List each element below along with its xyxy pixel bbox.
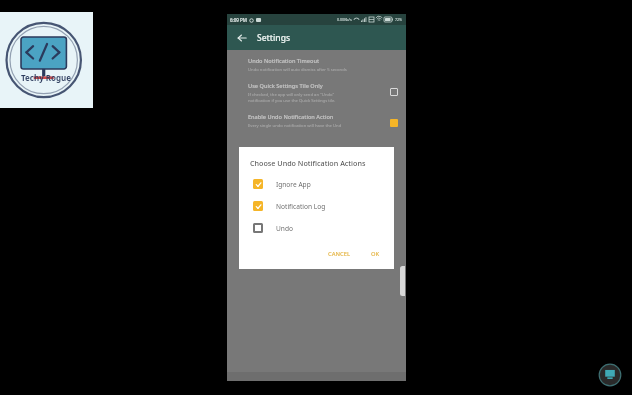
button[interactable]: Use Quick Settings Tile Only [248,82,398,104]
button[interactable]: OK [366,247,385,261]
staticText: Undo notification will auto dismiss afte… [248,67,347,73]
staticText: 72% [395,17,403,22]
staticText: OK [371,250,380,258]
staticText: Ignore App [276,180,311,189]
button[interactable]: Undo [250,223,385,233]
staticText: Undo Notification Timeout [248,57,320,65]
staticText: 6:09 PM [230,17,247,23]
staticText: Techy Rogue [21,72,72,83]
button[interactable]: Back [234,30,250,46]
staticText: Notification Log [276,202,326,211]
staticText: CANCEL [328,250,350,258]
button[interactable]: Ignore App [250,179,385,189]
staticText: Settings [257,32,291,44]
staticText: Every single undo notification will have… [248,123,342,129]
staticText: Choose Undo Notification Actions [250,158,366,168]
staticText: If checked, the app will only send an "U… [248,92,336,104]
staticText: Undo [276,224,293,233]
button[interactable]: Undo Notification Timeout [248,57,398,73]
button[interactable]: Recording indicator [598,363,622,387]
staticText: Enable Undo Notification Action [248,113,334,121]
staticText: 0.00Kb/s [337,17,352,22]
button[interactable]: Notification Log [250,201,385,211]
button[interactable]: CANCEL [323,247,355,261]
staticText: Use Quick Settings Tile Only [248,82,323,90]
button[interactable]: Enable Undo Notification Action [248,113,398,129]
